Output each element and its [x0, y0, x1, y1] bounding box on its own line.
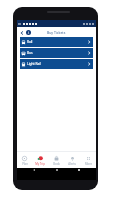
button[interactable]: Book: [48, 152, 64, 168]
staticText: My Trip: [35, 162, 45, 166]
button[interactable]: Alerts: [64, 152, 80, 168]
staticText: Bus: [27, 51, 33, 55]
staticText: Plan: [22, 162, 28, 166]
button[interactable]: Account: [26, 30, 31, 35]
staticText: Book: [53, 162, 60, 166]
button[interactable]: More: [80, 152, 96, 168]
button[interactable]: My Trip: [32, 152, 48, 168]
staticText: Alerts: [68, 162, 76, 166]
button[interactable]: Bus: [20, 48, 93, 58]
staticText: Light Rail: [27, 62, 41, 66]
button[interactable]: Rail: [20, 37, 93, 47]
staticText: Buy Tickets: [47, 30, 66, 35]
staticText: Rail: [27, 40, 33, 44]
button[interactable]: Back: [18, 29, 25, 36]
button[interactable]: Light Rail: [20, 59, 93, 69]
staticText: More: [85, 162, 92, 166]
button[interactable]: Plan: [17, 152, 32, 168]
